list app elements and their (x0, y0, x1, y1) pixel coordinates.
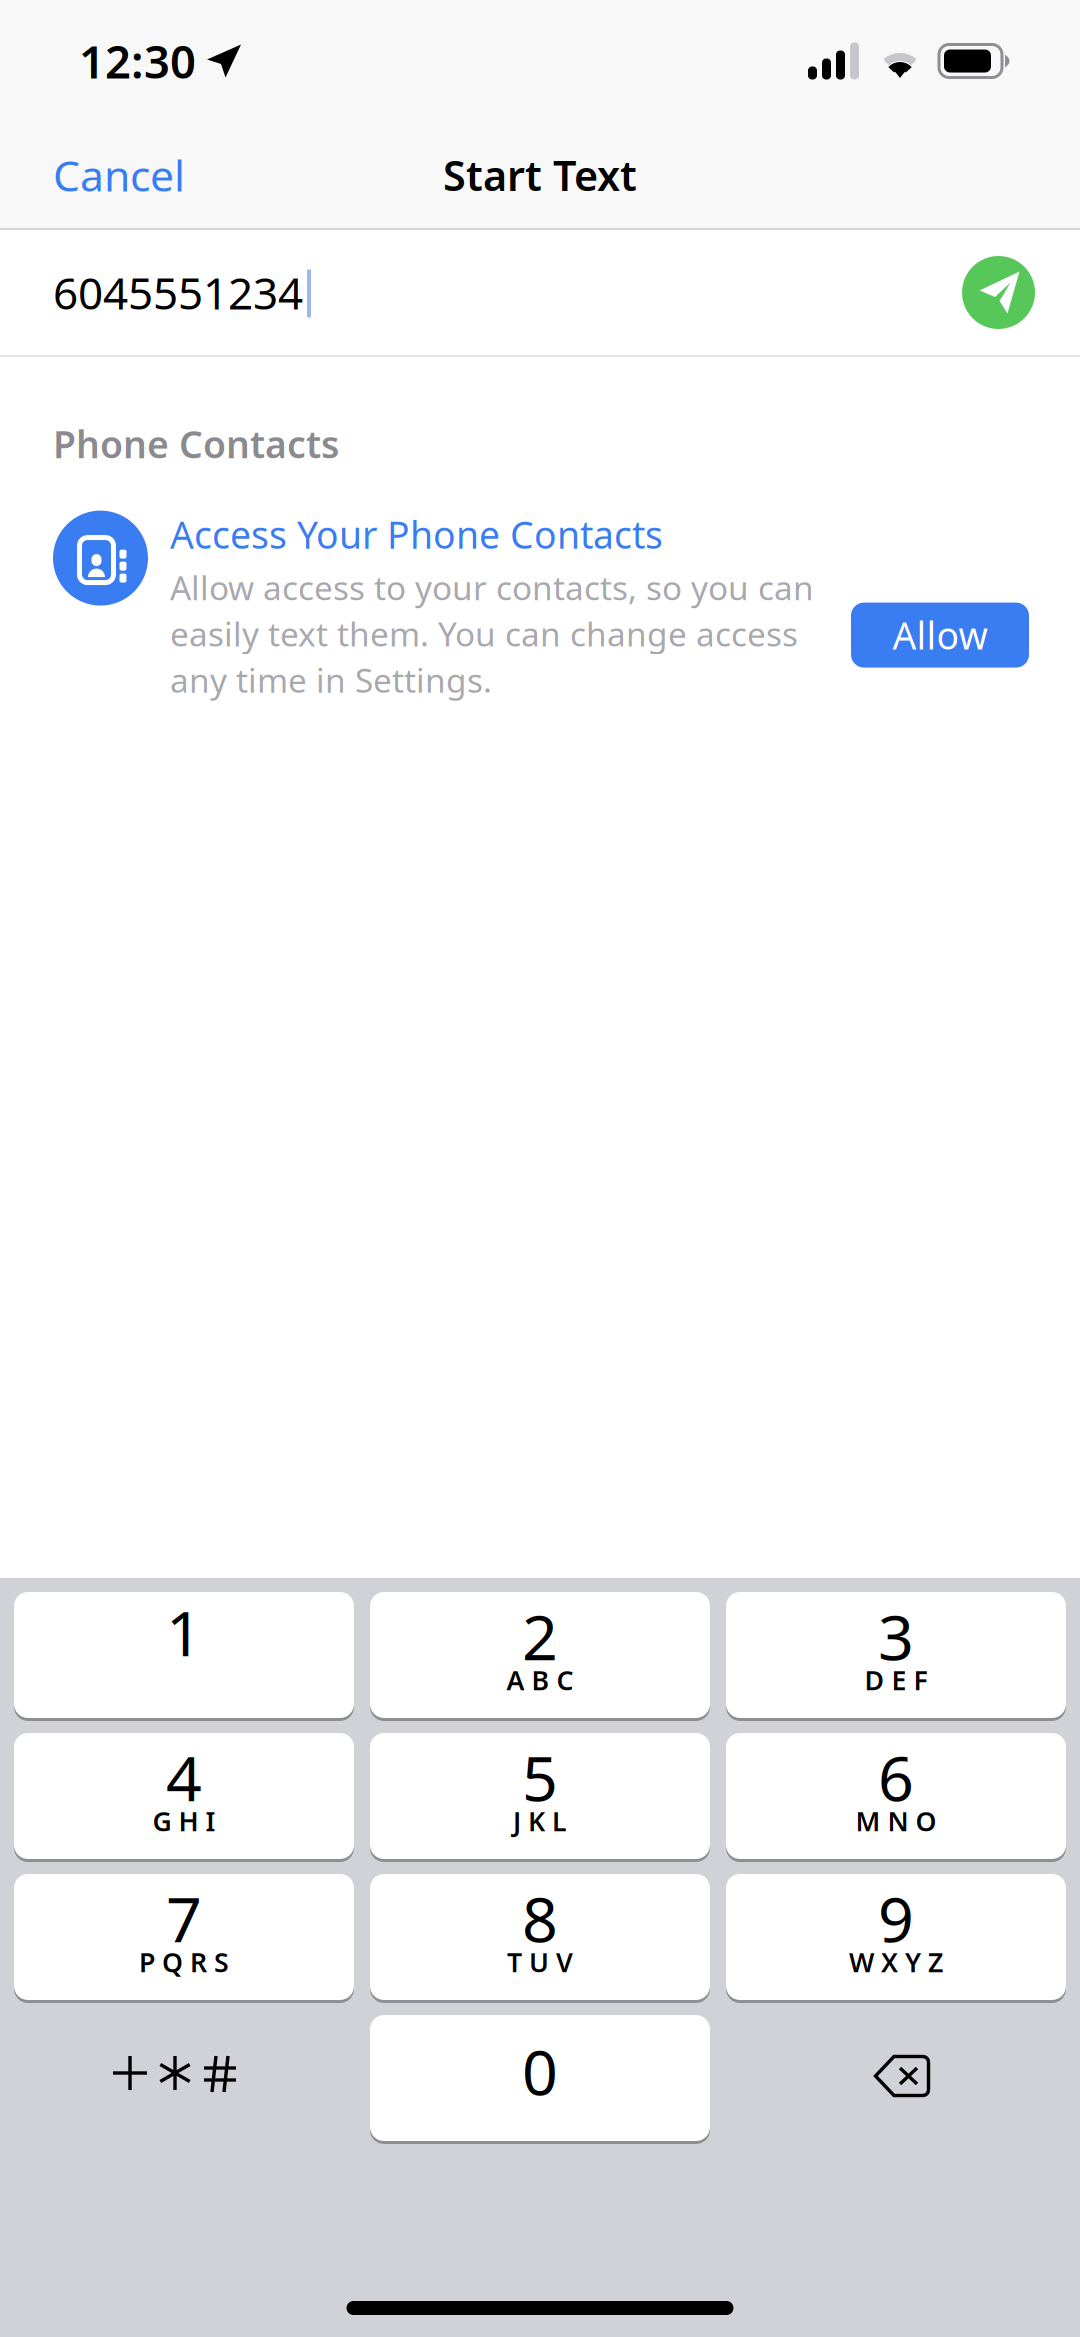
staticText: Start Text (443, 148, 637, 202)
staticText: Access Your Phone Contacts (170, 510, 663, 559)
button[interactable]: Send (962, 256, 1035, 329)
staticText: J K L (513, 1803, 567, 1839)
button[interactable]: 1 (14, 1592, 354, 1718)
staticText: W X Y Z (849, 1944, 943, 1980)
staticText: 1 (166, 1590, 202, 1674)
button[interactable]: 5 (370, 1733, 710, 1859)
staticText: 8 (522, 1876, 558, 1960)
button[interactable]: Allow (851, 603, 1029, 668)
button[interactable]: 2 (370, 1592, 710, 1718)
staticText: A B C (506, 1662, 573, 1698)
staticText: T U V (507, 1944, 573, 1980)
staticText: 3 (878, 1594, 914, 1678)
staticText: Phone Contacts (53, 419, 339, 469)
button[interactable]: 0 (370, 2015, 710, 2141)
button[interactable]: Plus, star and pound symbols (14, 2015, 354, 2141)
staticText: 5 (522, 1735, 558, 1819)
button[interactable]: 8 (370, 1874, 710, 2000)
staticText: 2 (522, 1594, 558, 1678)
staticText: 7 (166, 1876, 202, 1960)
staticText: D E F (864, 1662, 927, 1698)
staticText: Allow (892, 610, 987, 660)
staticText: 9 (878, 1876, 914, 1960)
staticText: G H I (152, 1803, 215, 1839)
button[interactable]: Cancel (53, 131, 205, 219)
button[interactable]: Delete (726, 2015, 1066, 2141)
button[interactable]: 6 (726, 1733, 1066, 1859)
staticText: M N O (855, 1803, 936, 1839)
staticText: Cancel (53, 147, 185, 203)
staticText: 4 (166, 1735, 202, 1819)
staticText: P Q R S (139, 1944, 229, 1980)
staticText: 12:30 (79, 31, 196, 91)
button[interactable]: 7 (14, 1874, 354, 2000)
button[interactable]: 3 (726, 1592, 1066, 1718)
button[interactable]: 9 (726, 1874, 1066, 2000)
button[interactable]: 4 (14, 1733, 354, 1859)
staticText: 0 (522, 2029, 558, 2113)
staticText: 6 (878, 1735, 914, 1819)
staticText: Allow access to your contacts, so you ca… (170, 565, 814, 702)
staticText: 6045551234 (53, 263, 303, 322)
